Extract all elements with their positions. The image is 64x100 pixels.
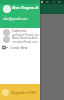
other: Add account	[2, 45, 8, 51]
staticText: Create New	[10, 46, 28, 50]
staticText: Catherine	[12, 29, 27, 33]
button[interactable]: Upgrade to PRO	[0, 84, 40, 100]
button[interactable]: Add account	[0, 45, 40, 51]
staticText: Upgrade to PRO	[11, 90, 37, 94]
button[interactable]: Nina Desmoulins	[0, 36, 40, 43]
staticText: Nina Desmoulins	[12, 36, 38, 40]
staticText: catherine@mail.com	[12, 33, 39, 36]
staticText: Alex Regnault	[12, 5, 39, 10]
staticText: nina.des@mail.com	[12, 40, 38, 43]
staticText: alex@gmail.com	[3, 17, 28, 21]
button[interactable]: Catherine	[0, 29, 40, 36]
